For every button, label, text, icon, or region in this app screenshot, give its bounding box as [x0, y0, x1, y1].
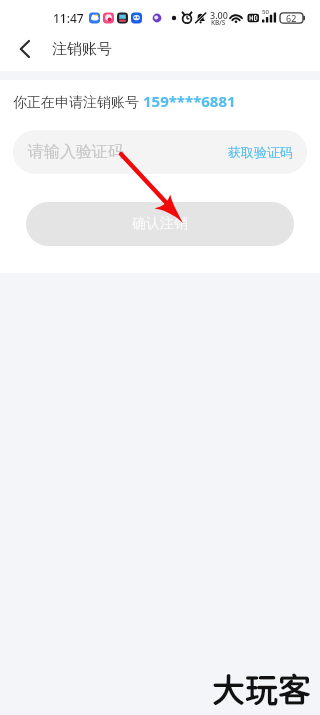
staticText: 请输入验证码 — [28, 142, 124, 162]
staticText: 159****6881 — [143, 91, 236, 111]
staticText: 50 — [262, 8, 269, 16]
staticText: 注销账号 — [52, 40, 112, 59]
staticText: 62 — [286, 12, 297, 24]
staticText: 11:47 — [53, 10, 84, 26]
staticText: 你正在申请注销账号 — [13, 92, 143, 111]
staticText: 大玩客 — [212, 670, 311, 709]
button[interactable]: 确认注销 — [26, 202, 294, 246]
staticText: 确认注销 — [132, 215, 188, 233]
button[interactable]: Back — [8, 32, 42, 66]
staticText: 获取验证码 — [228, 144, 293, 160]
button[interactable]: 请输入验证码 — [13, 130, 307, 174]
staticText: 3.00 — [210, 9, 228, 21]
staticText: KB/S — [211, 18, 226, 27]
button[interactable]: 获取验证码 — [218, 130, 307, 174]
